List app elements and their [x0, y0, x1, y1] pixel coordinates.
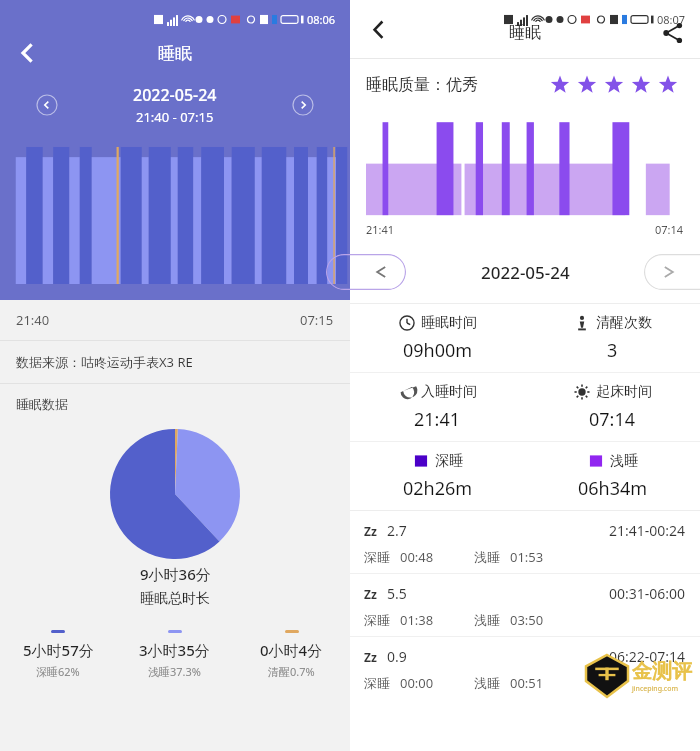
- staticText: 21:40: [16, 311, 50, 329]
- button[interactable]: Zz: [364, 637, 686, 699]
- staticText: 06h34m: [578, 476, 648, 501]
- staticText: 浅睡: [610, 452, 638, 470]
- staticText: 0.9: [387, 647, 407, 666]
- staticText: Zz: [364, 523, 377, 539]
- staticText: 2022-05-24: [481, 261, 570, 284]
- staticText: 09h00m: [403, 338, 473, 363]
- staticText: 金测评: [632, 659, 692, 684]
- staticText: 起床时间: [596, 383, 652, 401]
- staticText: 02h26m: [403, 476, 473, 501]
- staticText: 06:22-07:14: [609, 647, 686, 666]
- staticText: 00:51: [510, 674, 544, 692]
- staticText: 深睡: [364, 612, 390, 628]
- staticText: 浅睡: [474, 612, 500, 628]
- staticText: 数据来源：咕咚运动手表X3 RE: [16, 353, 193, 371]
- staticText: 00:48: [400, 548, 434, 566]
- staticText: 2022-05-24: [133, 84, 217, 106]
- button[interactable]: 睡眠时间: [350, 304, 525, 372]
- button[interactable]: 睡眠质量：优秀: [366, 59, 684, 111]
- button[interactable]: Back: [10, 35, 46, 71]
- button[interactable]: Previous day: [326, 254, 406, 290]
- staticText: 5小时57分: [23, 640, 94, 660]
- staticText: 深睡: [364, 549, 390, 565]
- button[interactable]: 清醒次数: [525, 304, 700, 372]
- button[interactable]: Next day: [292, 94, 314, 116]
- button[interactable]: 深睡: [350, 442, 525, 510]
- staticText: Zz: [364, 586, 377, 602]
- staticText: 0小时4分: [260, 640, 323, 660]
- staticText: Zz: [364, 649, 377, 665]
- staticText: 5.5: [387, 584, 407, 603]
- staticText: 07:14: [589, 407, 636, 432]
- staticText: 21:41: [366, 222, 395, 237]
- staticText: 3: [607, 338, 618, 363]
- staticText: 2.7: [387, 521, 407, 540]
- staticText: 08:06: [307, 12, 336, 27]
- staticText: 睡眠总时长: [140, 590, 210, 608]
- staticText: 清醒次数: [596, 314, 652, 332]
- staticText: 01:38: [400, 611, 434, 629]
- staticText: 入睡时间: [421, 383, 477, 401]
- staticText: 07:15: [300, 311, 334, 329]
- button[interactable]: Share: [658, 18, 688, 48]
- button[interactable]: Next day: [644, 254, 700, 290]
- staticText: 浅睡: [474, 549, 500, 565]
- staticText: 睡眠质量：优秀: [366, 75, 478, 95]
- staticText: 浅睡37.3%: [148, 664, 201, 679]
- staticText: 00:00: [400, 674, 434, 692]
- staticText: 03:50: [510, 611, 544, 629]
- button[interactable]: Zz: [364, 511, 686, 573]
- button[interactable]: 入睡时间: [350, 373, 525, 441]
- staticText: 浅睡: [474, 675, 500, 691]
- staticText: 07:14: [655, 222, 684, 237]
- staticText: 睡眠: [509, 23, 541, 43]
- staticText: 睡眠: [158, 43, 192, 64]
- staticText: 睡眠数据: [16, 396, 68, 412]
- staticText: 21:40 - 07:15: [136, 108, 214, 126]
- staticText: 深睡62%: [36, 664, 80, 679]
- staticText: 3小时35分: [139, 640, 210, 660]
- staticText: 深睡: [364, 675, 390, 691]
- button[interactable]: Back: [362, 12, 396, 46]
- staticText: 21:41: [414, 407, 461, 432]
- button[interactable]: Previous day: [36, 94, 58, 116]
- button[interactable]: 起床时间: [525, 373, 700, 441]
- staticText: 21:41-00:24: [609, 521, 686, 540]
- button[interactable]: Zz: [364, 574, 686, 636]
- staticText: 08:07: [657, 12, 686, 27]
- button[interactable]: 浅睡: [525, 442, 700, 510]
- staticText: jinceping.com: [632, 684, 679, 694]
- staticText: 00:31-06:00: [609, 584, 686, 603]
- staticText: 清醒0.7%: [268, 664, 315, 679]
- staticText: 01:53: [510, 548, 544, 566]
- staticText: 9小时36分: [140, 564, 211, 584]
- staticText: 睡眠时间: [421, 314, 477, 332]
- staticText: 深睡: [435, 452, 463, 470]
